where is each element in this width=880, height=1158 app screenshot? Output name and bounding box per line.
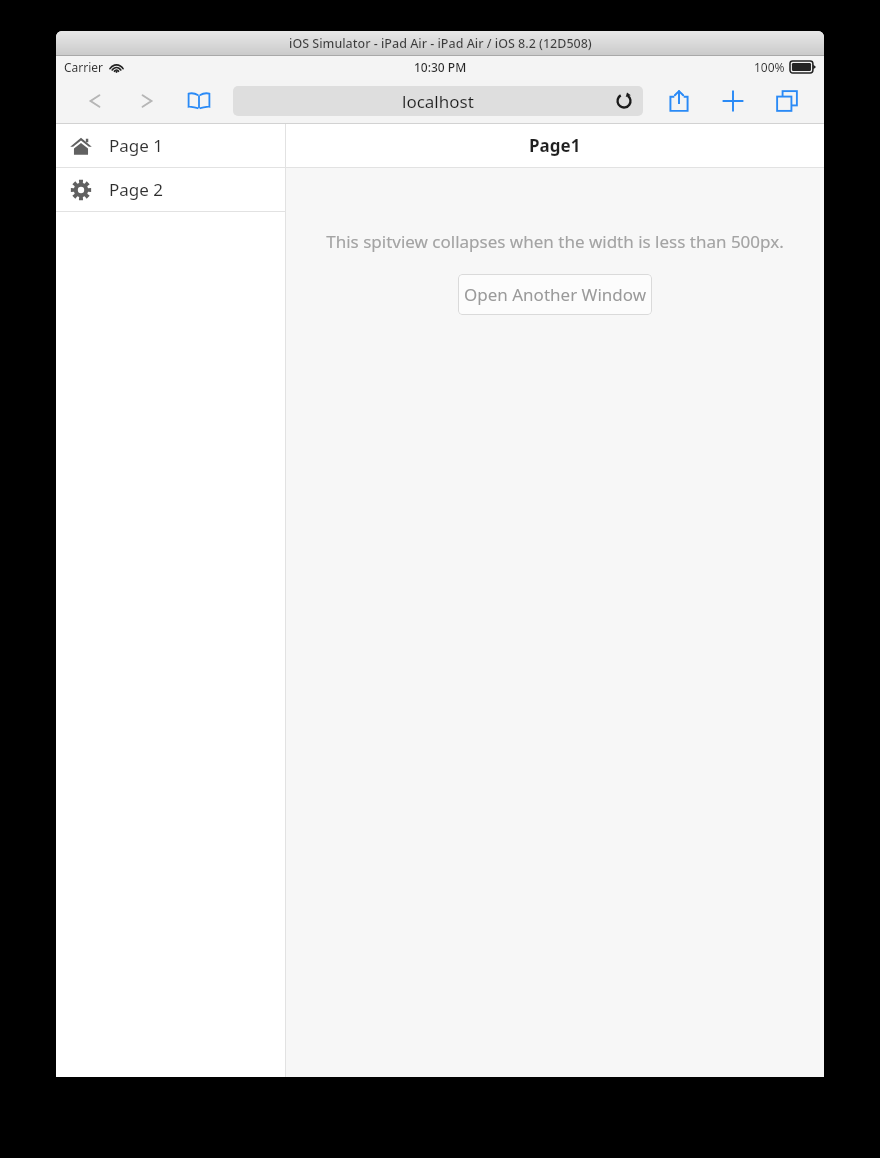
staticText: Carrier — [64, 59, 104, 75]
button[interactable]: Bookmarks — [182, 84, 216, 118]
staticText: 100% — [754, 59, 785, 75]
staticText: Page 1 — [109, 134, 164, 157]
button[interactable]: Page 2 — [56, 168, 285, 211]
button[interactable]: New tab — [716, 84, 750, 118]
button[interactable]: Open Another Window — [458, 274, 652, 315]
button[interactable]: Reload — [615, 92, 633, 110]
staticText: This spitview collapses when the width i… — [326, 230, 784, 253]
button[interactable]: localhost — [233, 86, 643, 116]
staticText: iOS Simulator - iPad Air - iPad Air / iO… — [289, 35, 592, 52]
button[interactable]: Page 1 — [56, 124, 285, 167]
button[interactable]: Back — [78, 84, 112, 118]
staticText: Page 2 — [109, 178, 164, 201]
button[interactable]: Forward — [130, 84, 164, 118]
staticText: Open Another Window — [464, 283, 647, 306]
button[interactable]: Show tabs — [770, 84, 804, 118]
staticText: 10:30 PM — [414, 59, 467, 75]
staticText: Page1 — [529, 134, 581, 157]
staticText: localhost — [402, 90, 474, 113]
button[interactable]: Share — [662, 84, 696, 118]
